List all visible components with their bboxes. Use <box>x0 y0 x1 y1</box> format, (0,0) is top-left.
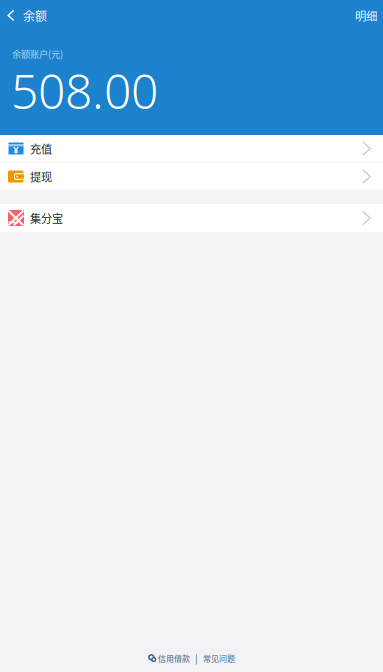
staticText: 充值 <box>30 140 52 157</box>
staticText: 信用借款 <box>158 652 190 664</box>
staticText: 集分宝 <box>30 210 63 226</box>
staticText: 余额 <box>23 7 47 24</box>
button[interactable]: 明细 <box>355 1 383 30</box>
staticText: 明细 <box>355 7 377 24</box>
button[interactable]: 提现 <box>0 163 383 190</box>
staticText: 508.00 <box>11 58 158 122</box>
staticText: 余额账户(元) <box>12 47 63 60</box>
button[interactable]: 余额 <box>0 1 47 30</box>
button[interactable]: 信用借款 <box>148 652 190 664</box>
staticText: 常见问题 <box>203 652 235 664</box>
staticText: 提现 <box>30 168 52 185</box>
staticText: | <box>195 651 198 665</box>
button[interactable]: 充值 <box>0 135 383 162</box>
button[interactable]: 集分宝 <box>0 204 383 232</box>
button[interactable]: 常见问题 <box>203 652 235 664</box>
